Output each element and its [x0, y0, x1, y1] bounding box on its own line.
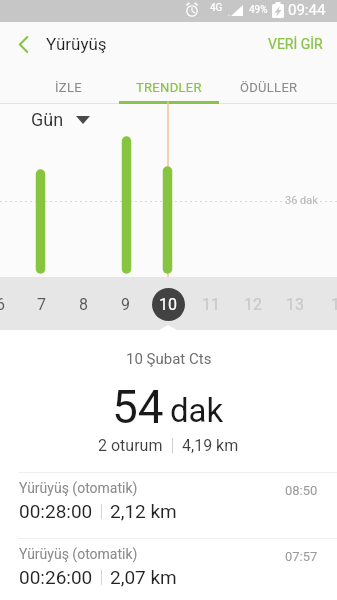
button[interactable]: 1 [321, 290, 337, 318]
staticText: ÖDÜLLER [240, 80, 298, 95]
button[interactable]: 13 [281, 290, 309, 318]
staticText: 2 oturum [98, 436, 163, 455]
button[interactable]: 12 [239, 290, 267, 318]
button[interactable]: Yürüyüş (otomatik) [0, 472, 337, 538]
staticText: İZLE [55, 80, 82, 95]
staticText: 2,12 km [110, 500, 177, 522]
staticText: 7 [37, 295, 46, 314]
button[interactable]: 8 [69, 290, 97, 318]
staticText: 13 [286, 295, 304, 314]
staticText: 07:57 [285, 549, 318, 564]
staticText: Yürüyüş (otomatik) [19, 480, 138, 496]
button[interactable]: Back [0, 22, 46, 66]
button[interactable]: 6 [0, 290, 14, 318]
staticText: 11 [202, 295, 220, 314]
staticText: 1 [331, 295, 337, 314]
staticText: 12 [244, 295, 262, 314]
staticText: dak [170, 391, 224, 430]
staticText: Yürüyüş [46, 34, 107, 54]
button[interactable]: Gün [27, 105, 94, 134]
staticText: Gün [31, 109, 64, 130]
staticText: TRENDLER [136, 80, 202, 95]
staticText: 36 dak [285, 194, 318, 207]
staticText: 09:44 [288, 1, 326, 19]
button[interactable]: 11 [197, 290, 225, 318]
button[interactable]: Yürüyüş (otomatik) [0, 538, 337, 600]
button[interactable]: 7 [27, 290, 55, 318]
button[interactable]: İZLE [18, 66, 119, 104]
staticText: 8 [79, 295, 88, 314]
staticText: 4,19 km [182, 436, 239, 455]
staticText: 4G [210, 2, 223, 14]
button[interactable]: VERİ GİR [254, 24, 337, 64]
staticText: 2,07 km [110, 566, 177, 588]
staticText: 00:26:00 [19, 566, 93, 588]
button[interactable]: TRENDLER [119, 66, 219, 104]
staticText: VERİ GİR [268, 36, 323, 52]
staticText: 10 [159, 295, 177, 314]
staticText: 9 [121, 295, 130, 314]
staticText: 10 Şubat Cts [126, 350, 212, 368]
button[interactable]: 10 [154, 290, 182, 318]
staticText: 08:50 [285, 483, 318, 498]
staticText: 6 [0, 295, 5, 314]
button[interactable]: 9 [111, 290, 139, 318]
staticText: 54 [112, 380, 164, 434]
button[interactable]: ÖDÜLLER [219, 66, 319, 104]
staticText: 49% [249, 4, 268, 16]
staticText: 00:28:00 [19, 500, 93, 522]
staticText: Yürüyüş (otomatik) [19, 546, 138, 562]
